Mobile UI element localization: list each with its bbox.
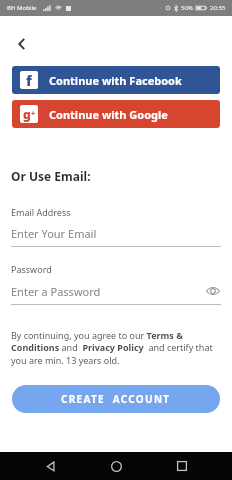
staticText: BH Mobile — [7, 4, 37, 12]
staticText: + — [31, 109, 36, 119]
button[interactable]: Show password — [205, 283, 221, 299]
staticText: 50% — [181, 4, 193, 12]
staticText: CREATE ACCOUNT — [61, 392, 171, 406]
button[interactable]: Recent apps — [167, 452, 197, 480]
staticText: Email Address — [11, 206, 71, 218]
button[interactable]: Back — [36, 452, 66, 480]
staticText: Enter a Password — [11, 284, 101, 299]
staticText: Enter Your Email — [11, 226, 97, 241]
button[interactable]: Back — [6, 28, 38, 60]
staticText: g — [23, 106, 31, 122]
staticText: Continue with Google — [49, 107, 168, 122]
button[interactable]: g — [12, 100, 220, 128]
staticText: Or Use Email: — [11, 168, 91, 184]
button[interactable]: Home — [101, 452, 131, 480]
button[interactable]: Password — [11, 263, 221, 305]
button[interactable]: CREATE ACCOUNT — [12, 385, 220, 413]
staticText: f — [26, 71, 32, 89]
staticText: Password — [11, 263, 52, 275]
button[interactable]: f — [12, 66, 220, 94]
staticText: Continue with Facebook — [49, 73, 182, 88]
staticText: By continuing, you agree to our Terms & … — [11, 329, 220, 367]
staticText: 20:55 — [210, 4, 226, 12]
button[interactable]: Email Address — [11, 206, 221, 247]
